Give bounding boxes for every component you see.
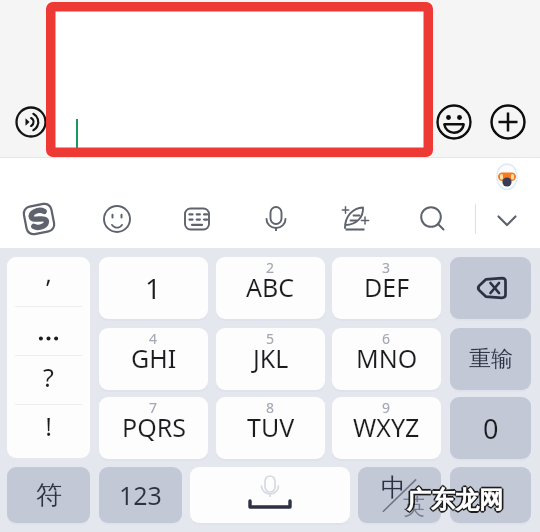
staticText: DEF <box>364 270 410 304</box>
staticText: 广东龙网 <box>408 486 504 516</box>
button[interactable]: Sogou input <box>22 202 56 236</box>
button[interactable]: 7 <box>99 397 208 459</box>
staticText: ? <box>43 360 54 394</box>
staticText: TUV <box>247 410 295 444</box>
button[interactable] <box>7 306 90 355</box>
staticText: 0 <box>483 410 499 447</box>
staticText: 符 <box>36 479 62 512</box>
button[interactable]: Voice input <box>13 104 49 140</box>
button[interactable]: Chinese English switch <box>358 467 441 523</box>
button[interactable]: 3 <box>332 257 441 319</box>
staticText: 6 <box>382 329 391 348</box>
staticText: 广东龙网 <box>409 485 505 515</box>
button[interactable]: 123 <box>99 467 182 523</box>
button[interactable]: Voice input <box>259 202 293 236</box>
button[interactable]: Enter <box>450 467 531 523</box>
staticText: 8 <box>266 398 275 417</box>
button[interactable]: Keyboard layout <box>180 202 214 236</box>
staticText: 123 <box>119 478 162 512</box>
button[interactable]: Emoji <box>436 104 472 140</box>
staticText: MNO <box>356 341 418 375</box>
button[interactable]: , <box>7 257 90 306</box>
staticText: ! <box>45 409 52 443</box>
staticText: 重输 <box>469 345 513 373</box>
button[interactable]: ! <box>7 404 90 458</box>
button[interactable]: 5 <box>216 328 325 390</box>
staticText: 英 <box>403 493 425 521</box>
button[interactable]: 符 <box>7 467 90 523</box>
staticText: , <box>45 257 52 290</box>
staticText: 7 <box>149 398 158 417</box>
button[interactable]: 4 <box>99 328 208 390</box>
staticText: 广东龙网 <box>407 483 503 513</box>
staticText: 中 <box>381 472 406 503</box>
staticText: GHI <box>131 341 177 375</box>
staticText: 4 <box>149 329 158 348</box>
button[interactable]: Stickers <box>100 202 134 236</box>
staticText: ABC <box>246 270 295 304</box>
staticText: 广东龙网 <box>405 485 501 515</box>
staticText: 广东龙网 <box>406 484 502 514</box>
button[interactable]: 6 <box>332 328 441 390</box>
button[interactable]: 8 <box>216 397 325 459</box>
button[interactable]: 0 <box>450 397 531 459</box>
staticText: 广东龙网 <box>407 487 503 517</box>
button[interactable]: 2 <box>216 257 325 319</box>
button[interactable]: AI writing <box>338 202 372 236</box>
button[interactable]: 9 <box>332 397 441 459</box>
staticText: JKL <box>253 341 289 375</box>
button[interactable]: Search <box>416 202 450 236</box>
button[interactable]: 1 <box>99 257 208 319</box>
button[interactable]: Hide keyboard <box>490 202 524 236</box>
button[interactable]: Space <box>190 467 350 523</box>
staticText: 3 <box>382 258 391 277</box>
button[interactable]: Backspace <box>450 257 531 319</box>
staticText: WXYZ <box>353 410 420 444</box>
staticText: 1 <box>145 269 162 307</box>
staticText: 9 <box>382 398 391 417</box>
button[interactable]: 重输 <box>450 328 531 390</box>
staticText: 广东龙网 <box>407 485 503 515</box>
staticText: 2 <box>266 258 275 277</box>
staticText: 广东龙网 <box>408 484 504 514</box>
button[interactable]: More options <box>490 104 526 140</box>
button[interactable]: Assistant <box>492 162 522 192</box>
staticText: 广东龙网 <box>406 486 502 516</box>
staticText: 5 <box>266 329 275 348</box>
staticText: PQRS <box>122 410 186 444</box>
button[interactable]: ? <box>7 355 90 404</box>
